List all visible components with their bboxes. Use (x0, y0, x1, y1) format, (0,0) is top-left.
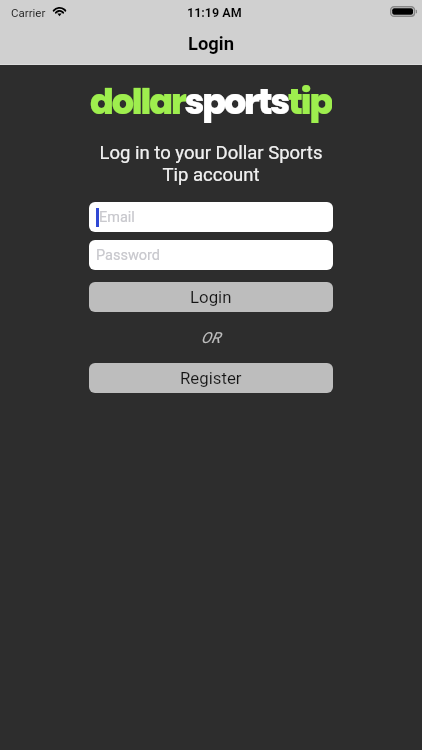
staticText: Login (190, 287, 232, 307)
other: Wi-Fi signal (52, 6, 67, 16)
staticText: OR (201, 329, 221, 347)
staticText: dollarsportstip (90, 77, 332, 123)
staticText: Password (96, 247, 161, 264)
button[interactable]: Email (89, 202, 333, 232)
staticText: Carrier (11, 6, 46, 19)
staticText: Login (188, 33, 235, 55)
staticText: Email (99, 209, 135, 226)
staticText: Log in to your Dollar Sports Tip account (0, 142, 422, 185)
button[interactable]: Register (89, 363, 333, 393)
button[interactable]: Login (89, 282, 333, 312)
button[interactable]: Password (89, 240, 333, 270)
staticText: 11:19 AM (187, 5, 242, 20)
other: Battery full (390, 6, 417, 17)
staticText: Register (180, 368, 242, 388)
